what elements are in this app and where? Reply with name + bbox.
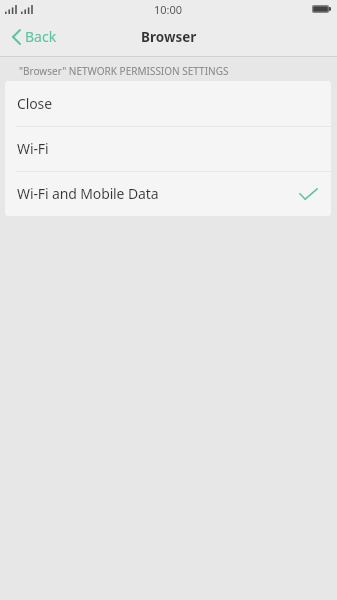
staticText: Close	[17, 94, 52, 113]
button[interactable]: Wi-Fi and Mobile Data	[5, 171, 331, 216]
staticText: "Browser" NETWORK PERMISSION SETTINGS	[19, 64, 229, 78]
other: Signal strength	[5, 5, 17, 14]
other: Signal strength	[21, 5, 33, 14]
staticText: 10:00	[154, 2, 183, 17]
staticText: Back	[25, 27, 57, 46]
button[interactable]: Wi-Fi	[5, 126, 331, 171]
other: Selected	[299, 188, 318, 200]
button[interactable]: Close	[5, 81, 331, 126]
staticText: Browser	[141, 28, 197, 46]
staticText: Wi-Fi	[17, 139, 49, 158]
other: Battery full	[312, 5, 331, 13]
staticText: Wi-Fi and Mobile Data	[17, 184, 159, 203]
button[interactable]: Back	[0, 21, 67, 52]
